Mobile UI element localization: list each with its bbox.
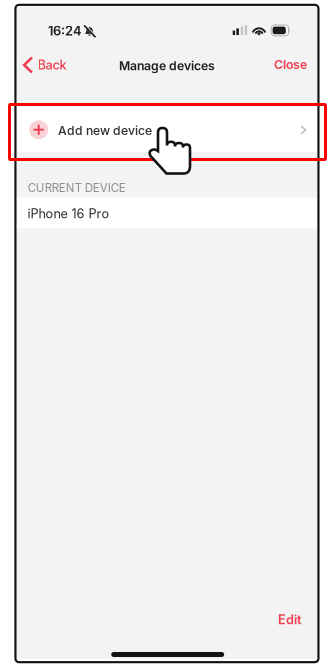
staticText: Back [37, 57, 66, 73]
button[interactable]: Back [17, 52, 74, 78]
button[interactable]: Close [266, 53, 317, 76]
staticText: Add new device [58, 123, 152, 138]
button[interactable]: Add new device [17, 106, 317, 152]
button[interactable]: Edit [268, 606, 311, 633]
staticText: 16:24 [48, 23, 82, 39]
staticText: Close [274, 57, 307, 72]
staticText: iPhone 16 Pro [28, 206, 110, 221]
staticText: Edit [278, 612, 301, 627]
staticText: Manage devices [119, 58, 215, 73]
staticText: CURRENT DEVICE [28, 181, 126, 195]
